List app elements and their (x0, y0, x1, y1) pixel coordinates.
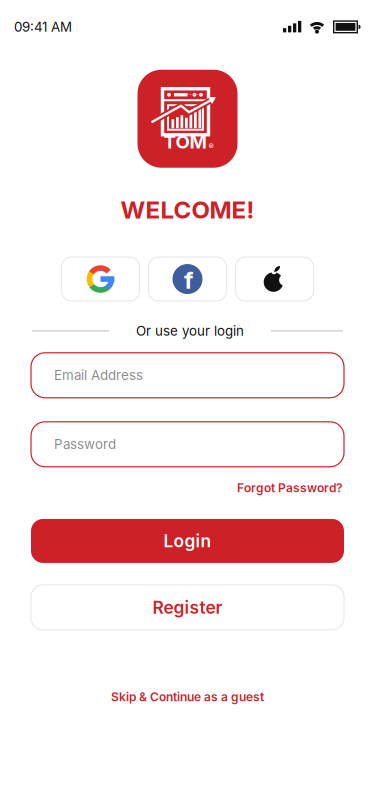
staticText: ® (208, 141, 213, 151)
button[interactable]: Register (31, 585, 344, 630)
button[interactable]: Skip & Continue as a guest (111, 690, 264, 704)
button[interactable]: Continue with Apple (235, 257, 313, 301)
staticText: Register (152, 597, 222, 618)
staticText: Password (54, 436, 116, 452)
button[interactable]: Login (31, 519, 344, 563)
staticText: Or use your login (136, 323, 244, 339)
staticText: WELCOME! (120, 196, 254, 224)
staticText: Login (163, 531, 211, 551)
staticText: TOM (163, 131, 206, 153)
staticText: Email Address (54, 367, 143, 383)
staticText: Skip & Continue as a guest (111, 690, 264, 704)
button[interactable]: Continue with Google (61, 257, 139, 301)
staticText: f (184, 266, 193, 294)
staticText: Forgot Password? (237, 481, 343, 495)
staticText: 09:41 AM (14, 19, 72, 35)
button[interactable]: Continue with Facebook (148, 257, 226, 301)
button[interactable]: Forgot Password? (237, 481, 343, 495)
